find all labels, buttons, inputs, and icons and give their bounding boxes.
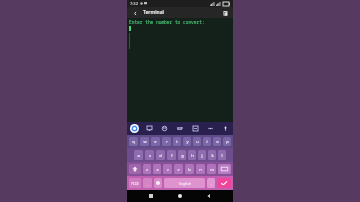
button[interactable]: y <box>183 137 191 146</box>
staticText: x <box>156 167 159 172</box>
button[interactable]: p <box>223 137 231 146</box>
button[interactable]: d <box>156 150 165 160</box>
button[interactable]: Google <box>130 124 139 133</box>
button[interactable]: v <box>174 164 183 174</box>
staticText: s <box>149 153 151 158</box>
button[interactable]: m <box>207 164 216 174</box>
staticText: i <box>206 139 208 144</box>
staticText: , <box>147 181 148 186</box>
staticText: GIF <box>177 126 183 131</box>
button[interactable]: GIF <box>175 124 185 133</box>
staticText: c <box>167 167 169 172</box>
staticText: o <box>216 139 219 144</box>
button[interactable]: Recents <box>146 191 156 201</box>
button[interactable]: Translate <box>191 124 200 133</box>
button[interactable]: z <box>143 164 151 174</box>
staticText: k <box>211 153 214 158</box>
staticText: Enter the number to convert: <box>129 19 205 25</box>
staticText: b <box>188 167 191 172</box>
button[interactable]: e <box>151 137 160 146</box>
button[interactable]: ?123 <box>129 178 141 188</box>
button[interactable]: w <box>140 137 149 146</box>
staticText: v <box>177 167 180 172</box>
staticText: t <box>176 139 178 144</box>
button[interactable]: n <box>196 164 205 174</box>
button[interactable]: Stickers <box>160 124 169 133</box>
staticText: f <box>171 153 173 158</box>
button[interactable]: , <box>143 178 152 188</box>
button[interactable]: c <box>163 164 172 174</box>
button[interactable]: Enter <box>217 178 231 188</box>
staticText: y <box>186 139 189 144</box>
staticText: m <box>210 167 214 172</box>
staticText: l <box>221 153 223 158</box>
staticText: d <box>159 153 162 158</box>
button[interactable]: English <box>164 178 205 188</box>
button[interactable]: k <box>208 150 216 160</box>
button[interactable]: Themes <box>145 124 154 133</box>
staticText: Terminal <box>143 9 164 16</box>
button[interactable]: r <box>162 137 171 146</box>
staticText: j <box>201 153 203 158</box>
staticText: w <box>143 139 147 144</box>
button[interactable]: b <box>185 164 194 174</box>
button[interactable]: s <box>145 150 154 160</box>
staticText: a <box>137 153 140 158</box>
button[interactable]: Shift <box>129 164 141 174</box>
button[interactable]: j <box>198 150 206 160</box>
staticText: ?123 <box>131 181 139 186</box>
button[interactable]: Voice input <box>221 124 230 133</box>
button[interactable]: Navigate up <box>131 9 139 17</box>
button[interactable]: Home <box>175 191 185 201</box>
button[interactable]: u <box>193 137 201 146</box>
button[interactable]: Emoji <box>154 178 162 188</box>
staticText: n <box>199 167 202 172</box>
button[interactable]: q <box>129 137 138 146</box>
staticText: g <box>181 153 184 158</box>
staticText: p <box>226 139 229 144</box>
staticText: English <box>179 181 191 186</box>
button[interactable]: i <box>203 137 211 146</box>
staticText: e <box>154 139 157 144</box>
button[interactable]: More options <box>206 124 215 133</box>
button[interactable]: Backspace <box>218 164 231 174</box>
button[interactable]: o <box>213 137 221 146</box>
button[interactable]: f <box>167 150 176 160</box>
staticText: 7:32 <box>130 1 138 6</box>
staticText: z <box>146 167 148 172</box>
staticText: . <box>211 181 212 186</box>
staticText: u <box>196 139 199 144</box>
button[interactable]: h <box>188 150 196 160</box>
button[interactable]: Back <box>204 191 214 201</box>
button[interactable]: a <box>134 150 143 160</box>
button[interactable]: . <box>207 178 215 188</box>
button[interactable]: g <box>178 150 186 160</box>
staticText: r <box>166 139 168 144</box>
button[interactable]: t <box>173 137 181 146</box>
staticText: q <box>132 139 135 144</box>
staticText: h <box>191 153 194 158</box>
button[interactable]: x <box>153 164 161 174</box>
button[interactable]: New session <box>221 9 229 17</box>
button[interactable]: l <box>218 150 226 160</box>
